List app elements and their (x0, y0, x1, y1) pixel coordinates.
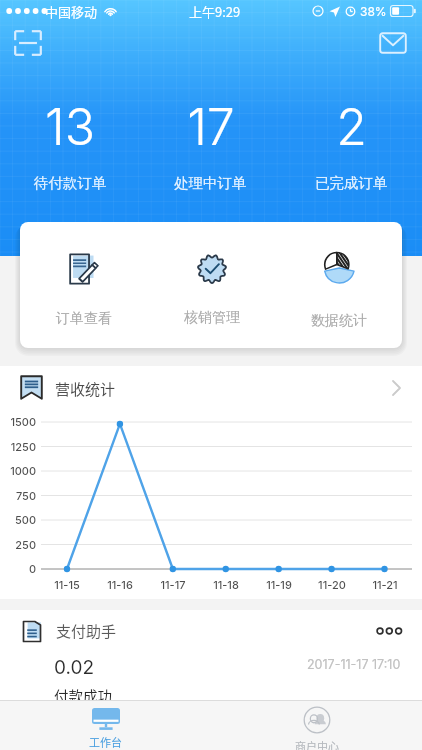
staticText: 17 (187, 97, 235, 157)
button[interactable]: 核销管理 (148, 222, 275, 348)
staticText: 11-19 (259, 578, 299, 591)
staticText: 500 (0, 513, 36, 526)
staticText: 11-17 (153, 578, 193, 591)
staticText: 11-20 (312, 578, 352, 591)
staticText: 处理中订单 (174, 174, 247, 192)
staticText: 11-21 (365, 578, 405, 591)
staticText: 工作台 (89, 734, 122, 750)
staticText: 2017-11-17 17:10 (307, 657, 401, 672)
staticText: 核销管理 (184, 309, 240, 327)
button[interactable]: More options (369, 611, 409, 651)
staticText: 已完成订单 (315, 174, 388, 192)
staticText: 38% (360, 4, 387, 19)
staticText: 待付款订单 (34, 174, 107, 192)
staticText: 1500 (0, 415, 36, 428)
staticText: 750 (0, 489, 36, 502)
staticText: 数据统计 (311, 312, 367, 330)
button[interactable]: 13 (0, 97, 140, 192)
button[interactable]: 17 (140, 97, 281, 192)
staticText: 营收统计 (55, 378, 116, 400)
staticText: 11-15 (47, 578, 87, 591)
staticText: 1250 (0, 440, 36, 453)
button[interactable]: 2 (281, 97, 422, 192)
staticText: 11-16 (100, 578, 140, 591)
button[interactable]: 数据统计 (275, 222, 402, 348)
staticText: 支付助手 (56, 620, 117, 642)
button[interactable]: 订单查看 (20, 222, 148, 348)
staticText: 付款成功 (54, 685, 112, 704)
staticText: 1000 (0, 464, 36, 477)
button[interactable]: Messages (371, 21, 415, 65)
staticText: 0 (0, 562, 36, 575)
staticText: 250 (0, 538, 36, 551)
button[interactable]: 工作台 (0, 701, 211, 750)
button[interactable]: Scan (6, 21, 50, 65)
staticText: 商户中心 (295, 738, 339, 750)
button[interactable]: 营收统计 (0, 366, 422, 408)
staticText: 上午9:29 (189, 2, 241, 21)
staticText: 11-18 (206, 578, 246, 591)
staticText: 订单查看 (56, 310, 112, 328)
staticText: 中国移动 (45, 2, 98, 21)
staticText: 2 (336, 97, 367, 157)
staticText: 13 (45, 97, 95, 157)
button[interactable]: 商户中心 (211, 701, 422, 750)
staticText: 0.02 (54, 656, 95, 679)
